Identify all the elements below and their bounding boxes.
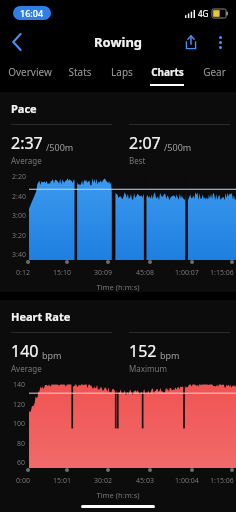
staticText: Charts xyxy=(151,65,184,79)
staticText: Best xyxy=(129,155,146,166)
staticText: 16:04 xyxy=(20,7,44,19)
staticText: 3:40 xyxy=(12,250,26,260)
staticText: 3:20 xyxy=(12,231,26,241)
staticText: 120 xyxy=(13,400,26,410)
staticText: bpm xyxy=(42,349,62,361)
staticText: Gear xyxy=(203,65,226,79)
button[interactable]: More options xyxy=(206,28,234,56)
staticText: Time (h:m:s) xyxy=(0,490,236,500)
staticText: 2:37 xyxy=(11,132,43,154)
staticText: Pace xyxy=(11,101,37,116)
staticText: 80 xyxy=(17,439,26,449)
button[interactable]: Charts xyxy=(142,58,192,88)
staticText: 45:03 xyxy=(136,476,154,486)
button[interactable]: Share xyxy=(176,27,206,57)
staticText: Overview xyxy=(8,65,52,79)
staticText: Stats xyxy=(68,65,92,79)
button[interactable]: Overview xyxy=(0,58,59,88)
staticText: bpm xyxy=(160,349,180,361)
staticText: 60 xyxy=(17,458,26,468)
staticText: 30:09 xyxy=(94,268,112,278)
staticText: 140 xyxy=(11,340,39,362)
staticText: 0:12 xyxy=(16,268,30,278)
staticText: 2:07 xyxy=(129,132,161,154)
staticText: 2:40 xyxy=(12,192,26,202)
button[interactable]: Laps xyxy=(101,58,142,88)
staticText: Heart Rate xyxy=(11,309,71,324)
staticText: /500m xyxy=(46,141,74,153)
staticText: 30:02 xyxy=(94,476,112,486)
staticText: 140 xyxy=(13,380,26,390)
staticText: Maximum xyxy=(129,363,167,374)
staticText: 45:08 xyxy=(136,268,154,278)
staticText: 15:01 xyxy=(53,476,71,486)
staticText: Laps xyxy=(111,65,133,79)
staticText: 15:10 xyxy=(53,268,71,278)
staticText: 1:15:06 xyxy=(210,268,234,278)
staticText: Time (h:m:s) xyxy=(0,282,236,292)
staticText: 152 xyxy=(129,340,157,362)
staticText: 4G xyxy=(198,8,209,19)
staticText: 3:00 xyxy=(12,211,26,221)
staticText: 2:20 xyxy=(12,172,26,182)
staticText: 1:00:07 xyxy=(175,268,199,278)
staticText: 0:00 xyxy=(16,476,30,486)
button[interactable]: Stats xyxy=(59,58,101,88)
staticText: 1:00:04 xyxy=(175,476,199,486)
button[interactable]: Back xyxy=(0,26,34,58)
staticText: Rowing xyxy=(94,33,143,51)
staticText: 100 xyxy=(13,419,26,429)
button[interactable]: Gear xyxy=(192,58,236,88)
staticText: Average xyxy=(11,155,42,166)
staticText: /500m xyxy=(164,141,192,153)
staticText: 1:15:06 xyxy=(210,476,234,486)
staticText: Average xyxy=(11,363,42,374)
